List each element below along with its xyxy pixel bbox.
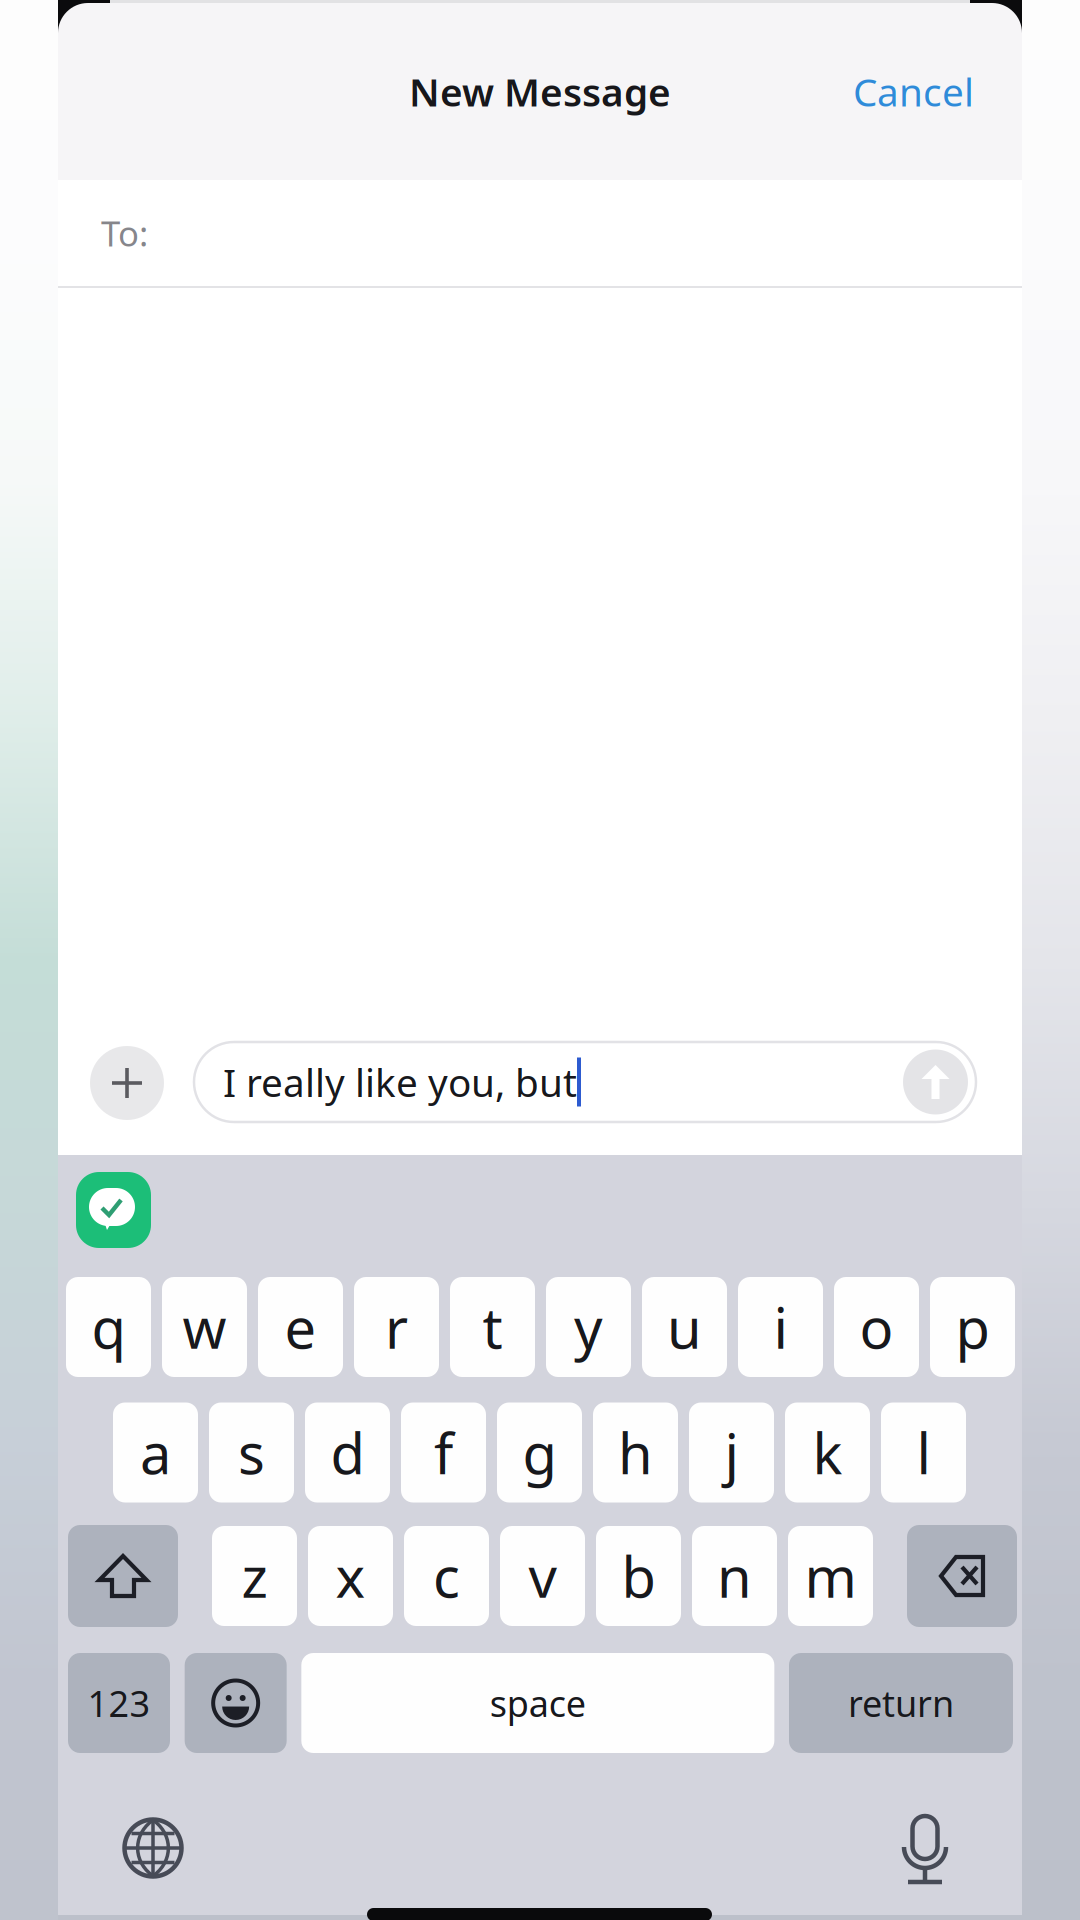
button[interactable]: k xyxy=(785,1402,870,1502)
button[interactable]: o xyxy=(834,1277,919,1377)
staticText: g xyxy=(522,1415,556,1490)
staticText: l xyxy=(916,1415,930,1490)
button[interactable]: Delete xyxy=(907,1525,1017,1627)
button[interactable]: v xyxy=(500,1526,585,1626)
button[interactable]: Messages suggestions xyxy=(76,1172,151,1248)
button[interactable]: h xyxy=(593,1402,678,1502)
button[interactable]: space xyxy=(301,1653,774,1753)
button[interactable]: x xyxy=(308,1526,393,1626)
staticText: u xyxy=(667,1290,702,1364)
staticText: y xyxy=(574,1290,603,1364)
button[interactable]: r xyxy=(354,1277,439,1377)
staticText: return xyxy=(848,1679,954,1727)
staticText: e xyxy=(284,1290,316,1364)
button[interactable]: Shift xyxy=(68,1525,178,1627)
button[interactable]: return xyxy=(789,1653,1013,1753)
button[interactable]: Add attachment xyxy=(90,1046,164,1120)
staticText: k xyxy=(812,1415,842,1490)
staticText: m xyxy=(804,1539,856,1613)
staticText: w xyxy=(182,1290,226,1364)
button[interactable]: g xyxy=(497,1402,582,1502)
staticText: c xyxy=(433,1539,460,1613)
button[interactable]: i xyxy=(738,1277,823,1377)
staticText: h xyxy=(618,1415,653,1490)
button[interactable]: s xyxy=(209,1402,294,1502)
staticText: b xyxy=(621,1539,655,1613)
button[interactable]: l xyxy=(881,1402,966,1502)
button[interactable]: Emoji keyboard xyxy=(185,1653,287,1753)
button[interactable]: m xyxy=(788,1526,873,1626)
staticText: p xyxy=(955,1290,989,1364)
button[interactable]: q xyxy=(66,1277,151,1377)
button[interactable]: f xyxy=(401,1402,486,1502)
button[interactable]: u xyxy=(642,1277,727,1377)
button[interactable]: Cancel xyxy=(829,48,998,135)
button[interactable]: 123 xyxy=(68,1653,170,1753)
button[interactable]: b xyxy=(596,1526,681,1626)
button[interactable]: t xyxy=(450,1277,535,1377)
staticText: d xyxy=(330,1415,364,1490)
button[interactable]: d xyxy=(305,1402,390,1502)
staticText: f xyxy=(434,1415,453,1490)
staticText: Cancel xyxy=(853,66,974,117)
staticText: To: xyxy=(101,210,148,256)
staticText: a xyxy=(140,1415,171,1490)
staticText: v xyxy=(528,1539,556,1613)
staticText: o xyxy=(859,1290,893,1364)
staticText: I really like you, but xyxy=(223,1056,577,1108)
staticText: x xyxy=(335,1539,365,1613)
staticText: q xyxy=(91,1290,125,1364)
button[interactable]: z xyxy=(212,1526,297,1626)
staticText: s xyxy=(238,1415,265,1490)
staticText: z xyxy=(241,1539,267,1613)
button[interactable]: p xyxy=(930,1277,1015,1377)
button[interactable]: a xyxy=(113,1402,198,1502)
staticText: i xyxy=(773,1290,787,1364)
staticText: r xyxy=(385,1290,408,1364)
button[interactable]: Dictate xyxy=(887,1805,963,1885)
staticText: n xyxy=(717,1539,752,1613)
staticText: New Message xyxy=(409,66,671,117)
button[interactable]: Send xyxy=(903,1049,968,1114)
button[interactable]: n xyxy=(692,1526,777,1626)
staticText: space xyxy=(490,1679,586,1727)
button[interactable]: j xyxy=(689,1402,774,1502)
staticText: 123 xyxy=(87,1679,150,1727)
button[interactable]: w xyxy=(162,1277,247,1377)
button[interactable]: y xyxy=(546,1277,631,1377)
button[interactable]: c xyxy=(404,1526,489,1626)
button[interactable]: Switch keyboard xyxy=(115,1810,191,1886)
button[interactable]: e xyxy=(258,1277,343,1377)
staticText: j xyxy=(724,1415,738,1490)
staticText: t xyxy=(482,1290,502,1364)
